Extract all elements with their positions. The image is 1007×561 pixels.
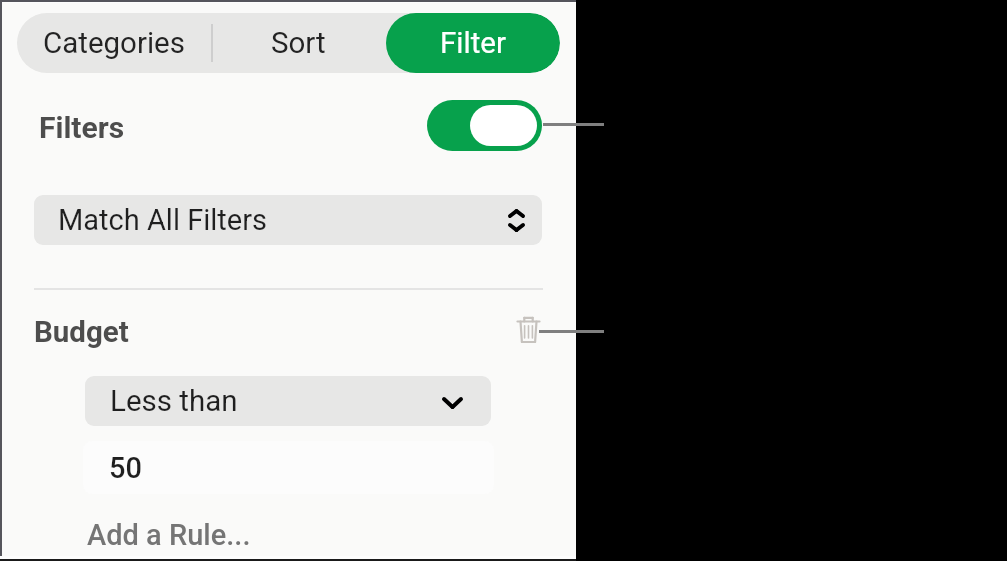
button[interactable]: Categories	[17, 13, 210, 73]
staticText: Filter	[440, 26, 506, 61]
staticText: Match All Filters	[58, 203, 267, 237]
other: Choose match rule	[506, 209, 532, 235]
staticText: Sort	[271, 26, 326, 61]
button[interactable]: 50	[83, 441, 494, 494]
button[interactable]: Add a Rule...	[70, 510, 390, 559]
button[interactable]: Match All Filters	[34, 195, 542, 245]
staticText: Budget	[34, 315, 129, 350]
button[interactable]: Filter	[386, 13, 560, 73]
button[interactable]: Filters on	[427, 100, 542, 151]
staticText: 50	[109, 451, 142, 485]
button[interactable]: Sort	[210, 13, 386, 73]
other: Choose comparison	[438, 396, 466, 414]
button[interactable]: Delete Budget rule	[511, 311, 547, 347]
staticText: Categories	[43, 26, 185, 61]
staticText: Add a Rule...	[87, 518, 251, 552]
staticText: Filters	[39, 110, 125, 145]
staticText: Less than	[110, 384, 238, 419]
button[interactable]: Less than	[85, 376, 491, 426]
